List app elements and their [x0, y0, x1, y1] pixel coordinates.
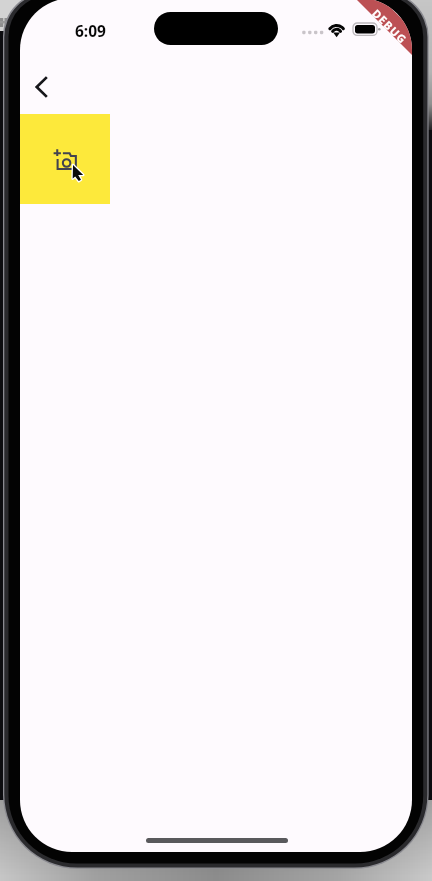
button[interactable]: Back	[20, 63, 66, 111]
staticText: 6:09	[75, 20, 106, 40]
button[interactable]: Add a photo	[20, 114, 110, 204]
staticText: DEBUG	[369, 6, 411, 47]
